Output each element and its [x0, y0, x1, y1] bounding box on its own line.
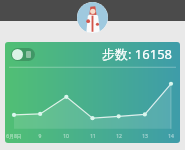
staticText: 10 [57, 133, 75, 140]
staticText: 9 [31, 133, 49, 140]
staticText: 13 [136, 133, 154, 140]
staticText: 11 [84, 133, 102, 140]
staticText: 12 [110, 133, 128, 140]
button[interactable]: Toggle [11, 48, 35, 61]
staticText: 14 [162, 133, 180, 140]
staticText: 步数: 16158 [102, 45, 173, 63]
staticText: 6月8日 [5, 133, 23, 140]
button[interactable]: Profile avatar [77, 2, 108, 33]
button[interactable]: Toggle [5, 42, 180, 143]
